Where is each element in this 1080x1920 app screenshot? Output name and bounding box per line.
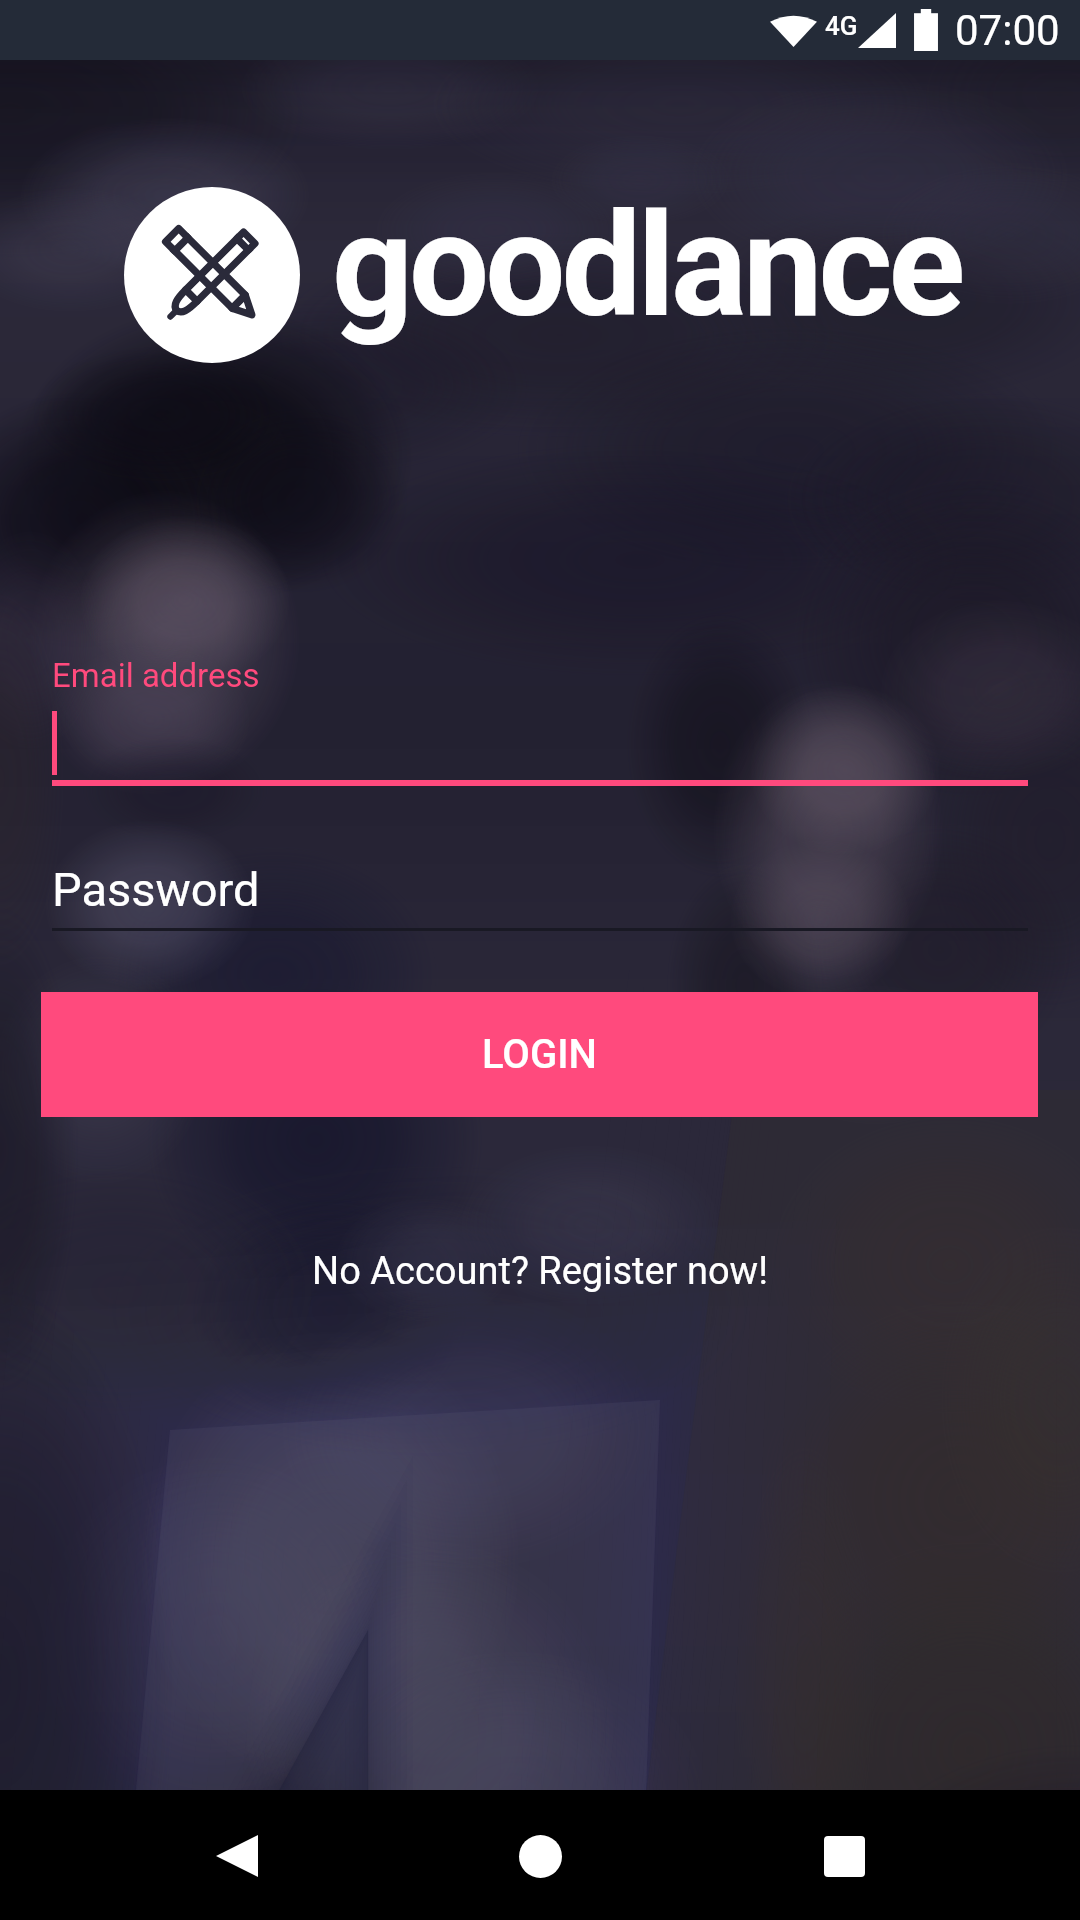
staticText: No Account? Register now! [312,1249,768,1294]
staticText: LOGIN [482,1031,597,1078]
staticText: Email address [52,656,260,695]
staticText: Password [52,862,260,917]
button[interactable]: Recent apps [784,1796,904,1916]
button[interactable]: Back [177,1796,297,1916]
button[interactable]: No Account? Register now! [0,1236,1080,1306]
button[interactable]: LOGIN [41,992,1038,1117]
staticText: 4G [825,11,858,41]
button[interactable]: Password [52,850,1028,934]
staticText: goodlance [332,183,962,349]
staticText: 07:00 [955,6,1060,55]
button[interactable]: Email address [52,640,1028,790]
button[interactable]: Home [480,1796,600,1916]
